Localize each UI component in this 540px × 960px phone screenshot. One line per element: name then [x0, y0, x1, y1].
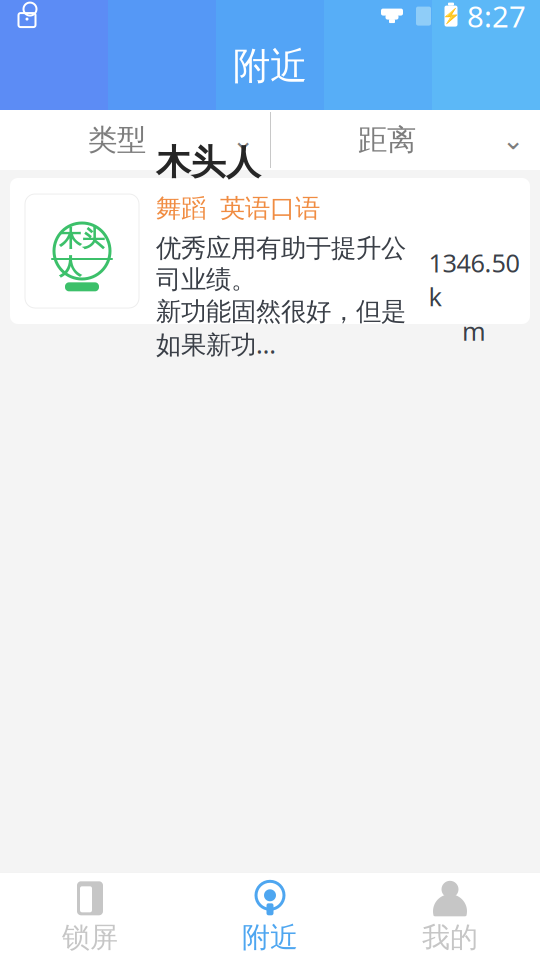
staticText: 英语口语	[220, 193, 320, 224]
staticText: ⚡	[442, 8, 460, 24]
button[interactable]: 锁屏	[0, 872, 180, 960]
button[interactable]: 我的	[360, 872, 540, 960]
button[interactable]: 类型	[0, 112, 270, 168]
staticText: 优秀应用有助于提升公司业绩。	[156, 233, 406, 295]
staticText: 8:27	[467, 0, 526, 36]
staticText: 木头人	[156, 141, 261, 184]
staticText: 舞蹈	[156, 193, 206, 224]
button[interactable]: 距离	[270, 112, 540, 168]
staticText: 我的	[422, 920, 478, 955]
staticText: 1346.50k	[428, 246, 519, 313]
staticText: 木头人	[59, 225, 105, 280]
staticText: ⌄	[232, 125, 254, 155]
staticText: ⌄	[502, 125, 524, 155]
staticText: 附近	[233, 43, 307, 89]
staticText: 锁屏	[62, 920, 118, 955]
button[interactable]: 附近	[180, 872, 360, 960]
staticText: 类型	[88, 122, 146, 158]
staticText: 附近	[242, 920, 298, 955]
staticText: m	[462, 314, 486, 348]
staticText: 距离	[358, 122, 416, 158]
staticText: 新功能固然很好，但是如果新功…	[156, 296, 406, 361]
button[interactable]: 木头人	[10, 178, 530, 324]
